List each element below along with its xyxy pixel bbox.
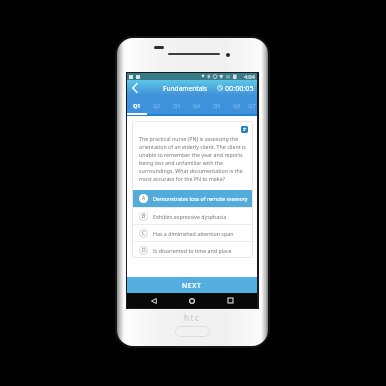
button[interactable]: Q7	[247, 96, 257, 116]
button[interactable]: Q1	[127, 96, 147, 116]
button[interactable]: B	[132, 208, 253, 224]
button[interactable]: C	[132, 225, 253, 241]
button[interactable]: Back	[127, 80, 143, 96]
staticText: A	[142, 195, 146, 202]
staticText: D	[142, 247, 146, 254]
staticText: Fundamentals	[163, 84, 208, 93]
staticText: 4:04	[244, 73, 255, 80]
staticText: Q5	[213, 102, 221, 109]
staticText: Q2	[153, 102, 161, 109]
staticText: Demonstrates loss of remote memory	[153, 195, 248, 202]
button[interactable]: Back	[143, 293, 165, 308]
button[interactable]: Bookmark	[241, 126, 248, 133]
button[interactable]: Q5	[207, 96, 227, 116]
button[interactable]: A	[132, 190, 253, 207]
staticText: Exhibits expressive dysphasia	[153, 213, 227, 220]
staticText: NEXT	[182, 281, 202, 290]
staticText: Q6	[233, 102, 241, 109]
staticText: Q4	[193, 102, 201, 109]
button[interactable]: Q6	[227, 96, 247, 116]
button[interactable]: Q2	[147, 96, 167, 116]
staticText: Q7	[248, 102, 256, 109]
button[interactable]: Q4	[187, 96, 207, 116]
staticText: Has a diminished attention span	[153, 230, 234, 237]
staticText: Is disoriented to time and place	[153, 247, 232, 254]
staticText: htc	[184, 312, 201, 323]
button[interactable]: NEXT	[127, 277, 257, 293]
staticText: Q1	[133, 102, 141, 109]
button[interactable]: Q3	[167, 96, 187, 116]
staticText: 00:00:05	[225, 83, 254, 93]
staticText: Q3	[173, 102, 181, 109]
button[interactable]: Home	[181, 293, 203, 308]
staticText: C	[142, 230, 146, 237]
staticText: B	[142, 213, 146, 220]
button[interactable]: Recent apps	[219, 293, 241, 308]
button[interactable]: D	[132, 242, 253, 258]
staticText: The practical nurse (PN) is assessing th…	[139, 135, 250, 182]
